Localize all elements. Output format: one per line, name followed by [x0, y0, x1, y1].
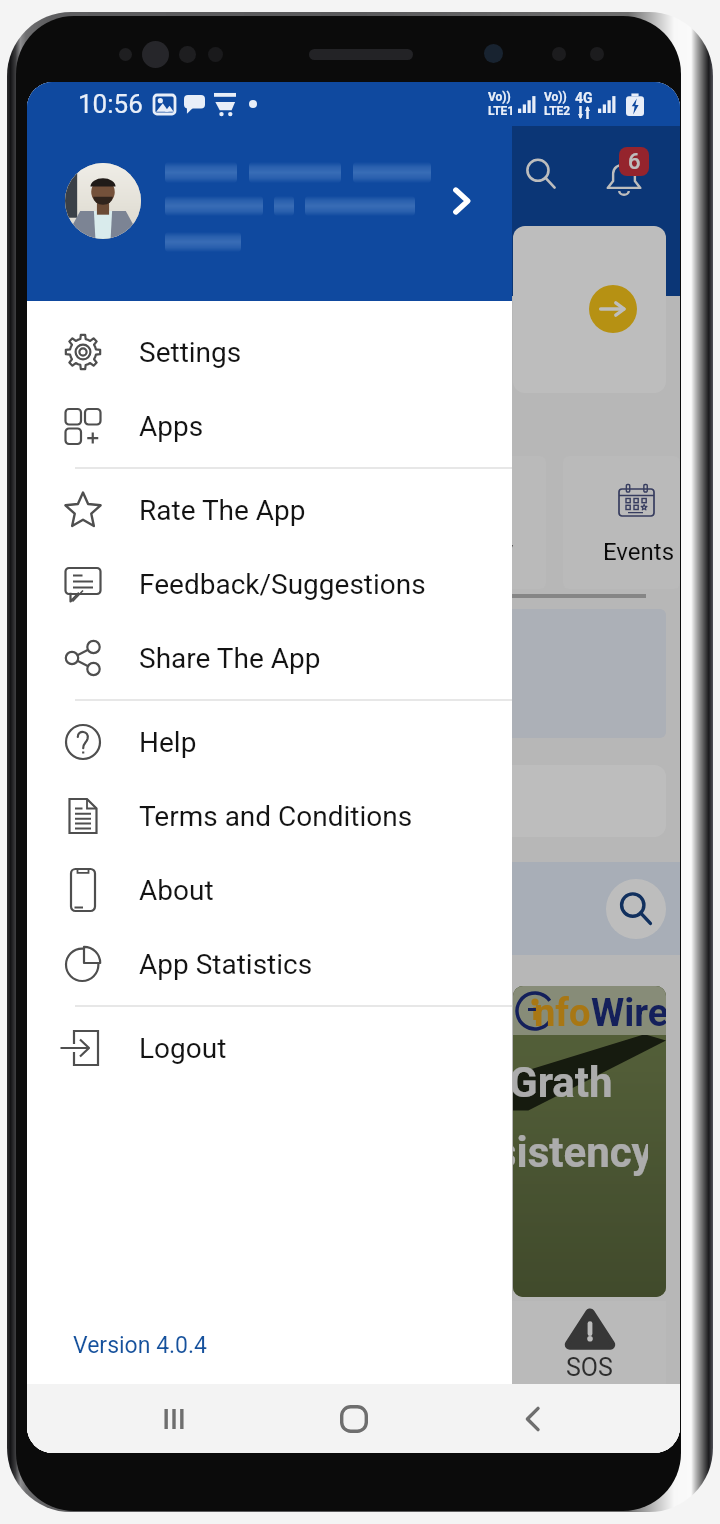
button[interactable]: nfo [513, 986, 666, 1297]
button[interactable]: Next [589, 285, 637, 333]
button[interactable]: Back [501, 1387, 565, 1451]
button[interactable]: y [496, 456, 546, 589]
button[interactable]: Help [27, 705, 512, 779]
staticText: Version 4.0.4 [73, 1332, 208, 1359]
staticText: Feedback/Suggestions [139, 568, 426, 601]
staticText: Terms and Conditions [139, 800, 413, 833]
button[interactable]: Notifications [594, 145, 654, 205]
staticText: SOS [566, 1353, 613, 1382]
staticText: LTE2 [544, 104, 571, 118]
other: Open profile [442, 182, 480, 220]
staticText: LTE1 [488, 104, 515, 118]
button[interactable]: Logout [27, 1011, 512, 1085]
staticText: 4G [575, 90, 593, 106]
button[interactable]: Apps [27, 389, 512, 463]
button[interactable]: Feedback/Suggestions [27, 547, 512, 621]
button[interactable]: Search [606, 879, 666, 939]
button[interactable]: Terms and Conditions [27, 779, 512, 853]
button[interactable]: SOS [512, 1301, 666, 1384]
button[interactable]: Open profile [27, 82, 512, 301]
staticText: Vo)) [488, 90, 511, 104]
button[interactable]: Home [322, 1387, 386, 1451]
staticText: Rate The App [139, 494, 306, 527]
staticText: 10:56 [78, 89, 143, 119]
staticText: Share The App [139, 642, 321, 675]
button[interactable]: Share The App [27, 621, 512, 695]
staticText: Logout [139, 1032, 227, 1065]
staticText: About [139, 874, 214, 907]
staticText: Wire [591, 991, 666, 1036]
staticText: Apps [139, 410, 204, 443]
staticText: y [500, 534, 514, 567]
staticText: sistency [513, 1128, 648, 1177]
button[interactable]: About [27, 853, 512, 927]
staticText: nfo [534, 991, 591, 1036]
button[interactable]: App Statistics [27, 927, 512, 1001]
button[interactable]: Settings [27, 315, 512, 389]
button[interactable]: Events [563, 456, 680, 589]
staticText: App Statistics [139, 948, 313, 981]
staticText: Grath [513, 1058, 613, 1107]
staticText: Vo)) [544, 90, 567, 104]
button[interactable]: Search [513, 146, 569, 202]
staticText: 6 [628, 149, 641, 175]
staticText: Help [139, 726, 197, 759]
button[interactable]: Rate The App [27, 473, 512, 547]
button[interactable]: Recents [142, 1387, 206, 1451]
staticText: Settings [139, 336, 242, 369]
staticText: Events [603, 538, 675, 566]
